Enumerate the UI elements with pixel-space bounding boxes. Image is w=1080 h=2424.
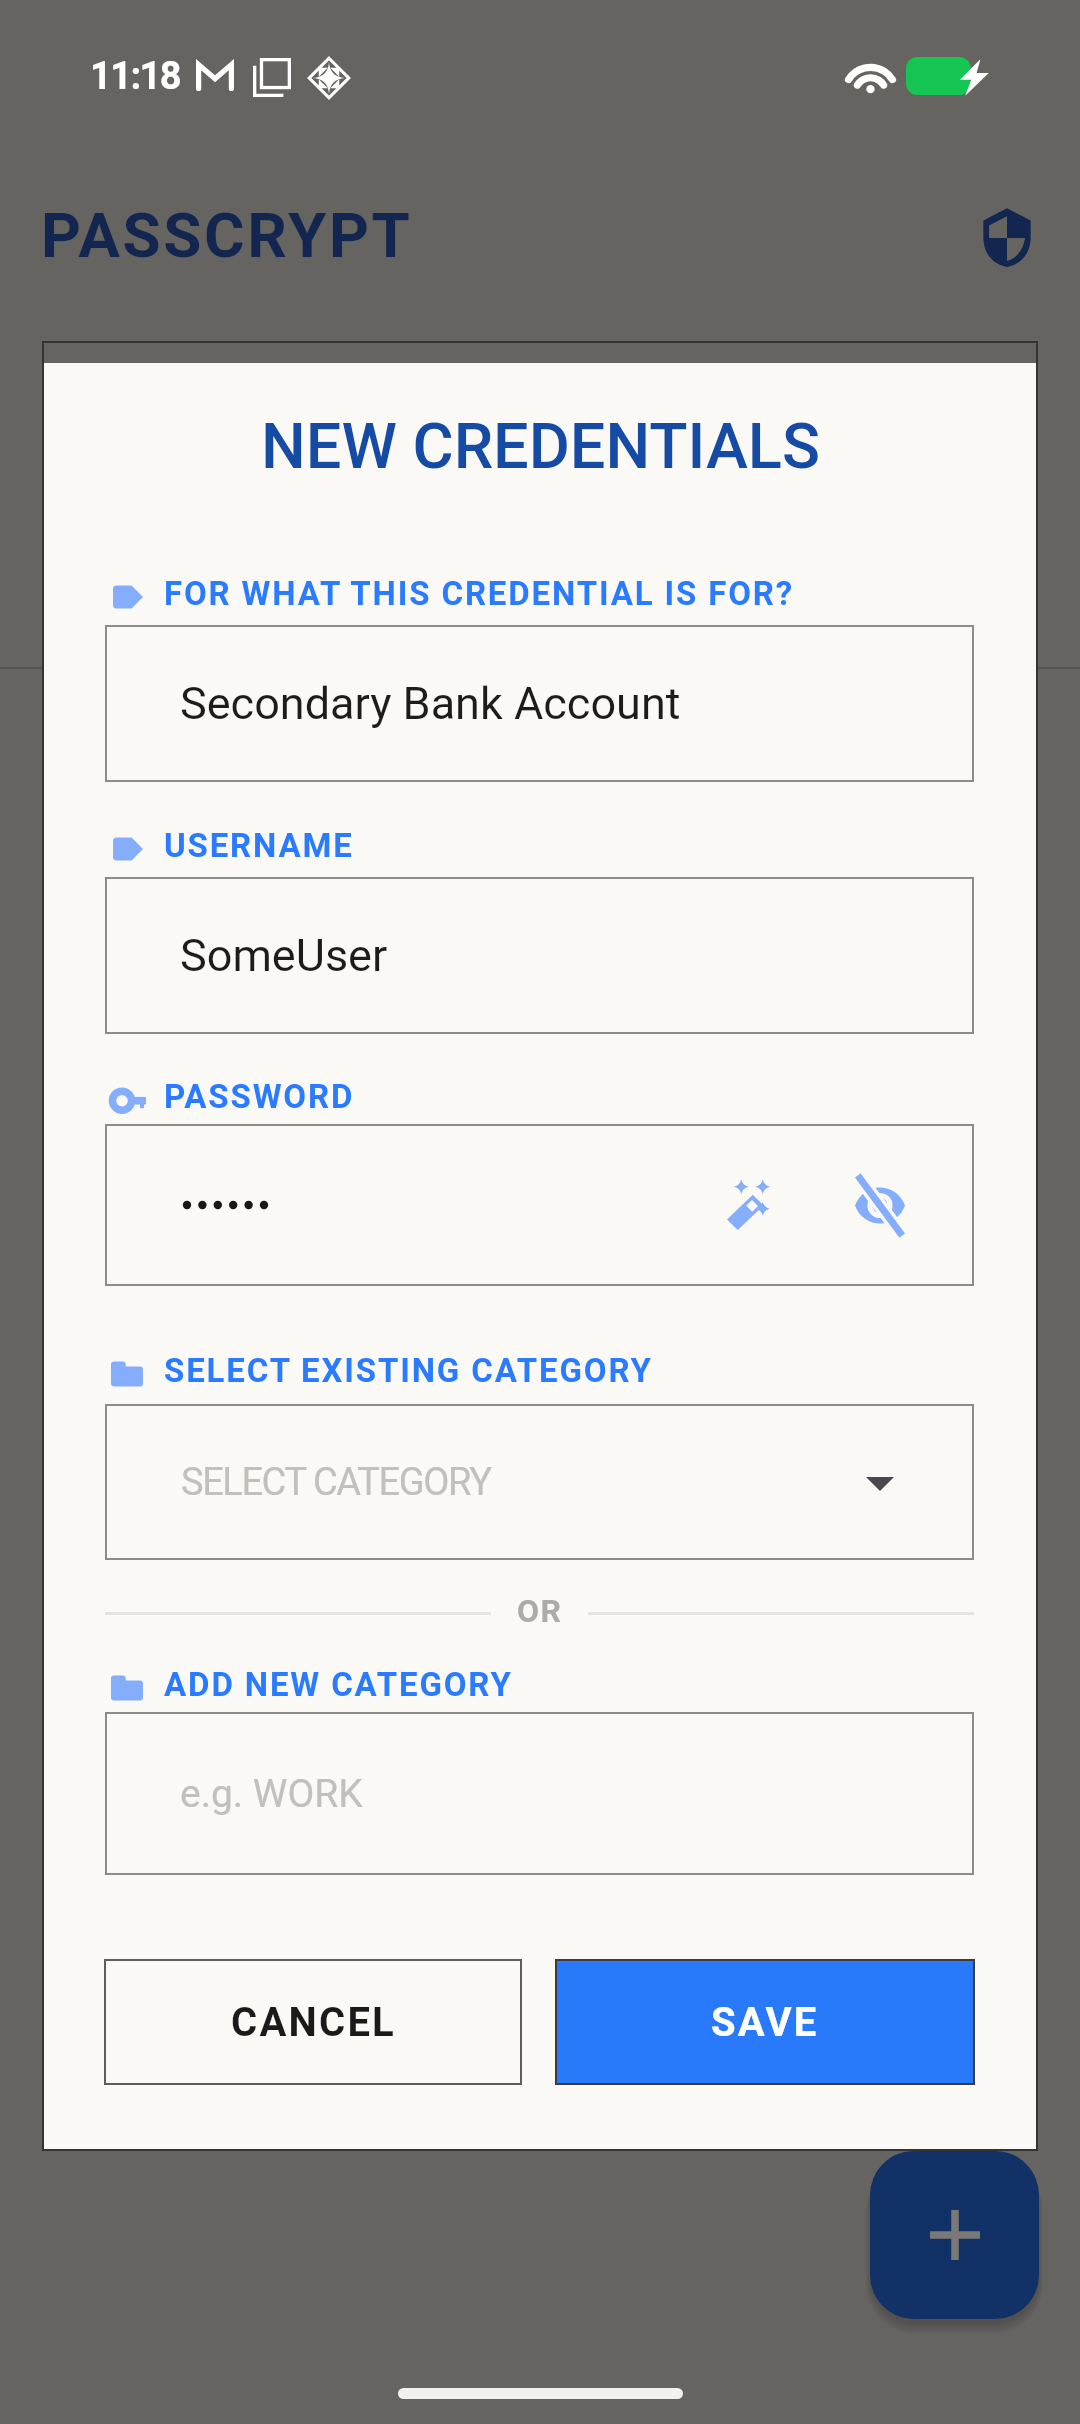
button[interactable]: SELECT EXISTING CATEGORY [105,1340,653,1400]
button[interactable]: SomeUser [105,877,974,1034]
staticText: SELECT CATEGORY [181,1460,491,1505]
button[interactable]: e.g. WORK [105,1712,974,1875]
staticText: 11:18 [90,54,180,99]
staticText: FOR WHAT THIS CREDENTIAL IS FOR? [164,574,794,613]
button[interactable]: Security [962,190,1052,284]
button[interactable]: Generate password [699,1124,805,1286]
button[interactable]: ADD NEW CATEGORY [105,1654,513,1714]
button[interactable]: CANCEL [104,1959,522,2085]
button[interactable]: FOR WHAT THIS CREDENTIAL IS FOR? [105,563,794,623]
button[interactable]: PASSCRYPT [26,187,413,283]
button[interactable]: USERNAME [105,815,354,875]
staticText: PASSCRYPT [41,199,413,272]
staticText: NEW CREDENTIALS [261,410,820,484]
button[interactable]: Secondary Bank Account [105,625,974,782]
button[interactable]: SELECT CATEGORY [105,1404,974,1560]
button[interactable]: SAVE [555,1959,975,2085]
staticText: OR [517,1592,563,1630]
staticText: SomeUser [180,929,388,982]
staticText: USERNAME [164,826,354,865]
staticText: SAVE [711,1999,819,2046]
staticText: Secondary Bank Account [180,677,681,730]
button[interactable]: Generate password [105,1124,974,1286]
staticText: e.g. WORK [180,1771,363,1817]
button[interactable]: Add credential [870,2151,1039,2319]
button[interactable]: PASSWORD [105,1066,355,1126]
staticText: PASSWORD [164,1077,355,1116]
staticText: SELECT EXISTING CATEGORY [164,1351,653,1390]
staticText: CANCEL [231,1999,396,2046]
staticText: ADD NEW CATEGORY [164,1665,513,1704]
button[interactable]: Show password [828,1124,932,1286]
